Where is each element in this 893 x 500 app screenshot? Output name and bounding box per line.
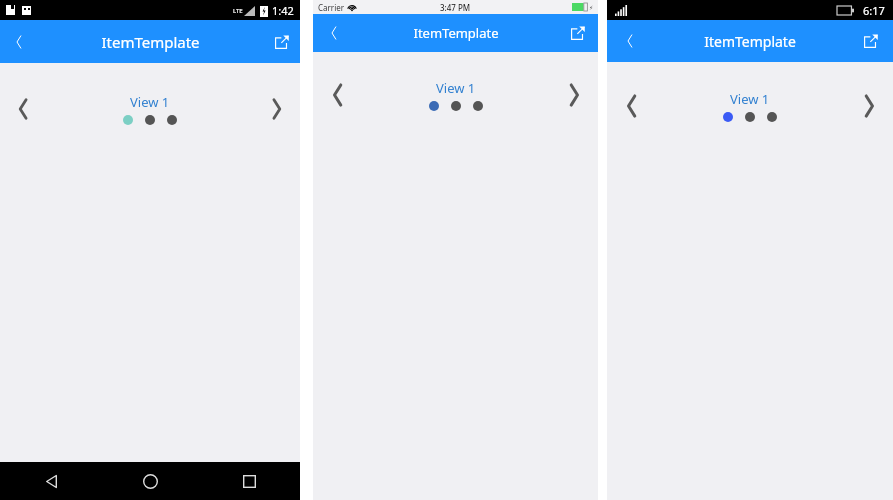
button[interactable]: Next — [260, 92, 294, 126]
button[interactable]: Previous — [613, 88, 649, 124]
staticText: ⚡ — [589, 4, 594, 11]
button[interactable]: Back — [6, 29, 32, 55]
button[interactable]: Recents — [234, 466, 264, 496]
button[interactable]: Next — [851, 88, 887, 124]
staticText: View 1 — [436, 79, 476, 97]
button[interactable]: Back — [321, 20, 347, 46]
staticText: ItemTemplate — [704, 32, 796, 51]
button[interactable]: Open in new — [270, 30, 294, 54]
staticText: View 1 — [730, 90, 770, 108]
staticText: 3:47 PM — [440, 2, 471, 13]
button[interactable]: Open in new — [566, 21, 590, 45]
staticText: 1:42 — [272, 3, 294, 18]
button[interactable]: Previous — [319, 77, 355, 113]
staticText: ItemTemplate — [101, 32, 200, 52]
button[interactable]: Home — [135, 466, 165, 496]
staticText: LTE — [233, 7, 243, 15]
button[interactable]: Next — [556, 77, 592, 113]
button[interactable]: Open in new — [859, 29, 883, 53]
staticText: 6:17 — [863, 3, 885, 18]
staticText: View 1 — [130, 93, 170, 111]
button[interactable]: Previous — [6, 92, 40, 126]
staticText: Carrier — [318, 2, 345, 13]
button[interactable]: Back — [617, 28, 643, 54]
staticText: ItemTemplate — [413, 24, 499, 42]
button[interactable]: Back — [36, 466, 66, 496]
